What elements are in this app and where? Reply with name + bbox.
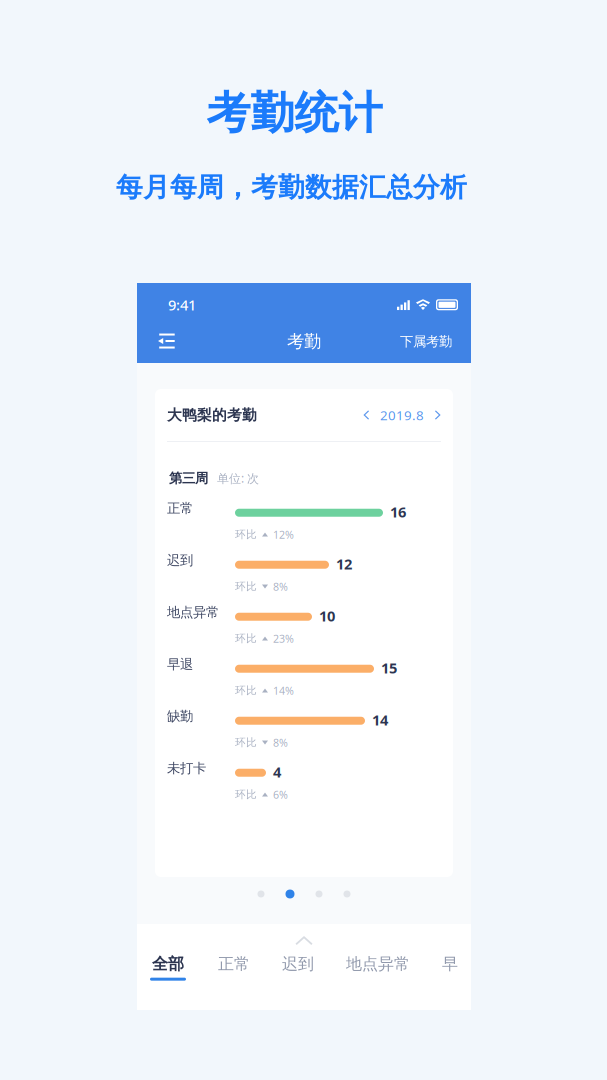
staticText: 考勤统计 <box>206 86 382 140</box>
staticText: 12 <box>336 554 352 573</box>
staticText: 迟到 <box>167 552 193 568</box>
staticText: 6% <box>273 787 288 802</box>
staticText: 环比 <box>235 788 257 801</box>
staticText: 全部 <box>152 954 184 974</box>
button[interactable]: 全部 <box>150 954 186 981</box>
staticText: 地点异常 <box>346 954 410 974</box>
staticText: 正常 <box>218 954 250 974</box>
button[interactable]: 早 <box>442 954 458 981</box>
staticText: 9:41 <box>168 295 196 314</box>
button[interactable]: Menu <box>152 327 181 355</box>
staticText: 2019.8 <box>380 406 424 424</box>
staticText: 地点异常 <box>167 604 219 620</box>
staticText: 环比 <box>235 632 257 645</box>
staticText: 8% <box>273 579 288 594</box>
staticText: 14% <box>273 683 294 698</box>
staticText: 8% <box>273 735 288 750</box>
button[interactable]: Expand <box>275 924 332 945</box>
staticText: 正常 <box>167 500 193 516</box>
staticText: 4 <box>273 762 281 781</box>
staticText: 14 <box>372 710 388 729</box>
staticText: 15 <box>381 658 397 677</box>
button[interactable]: 迟到 <box>282 954 314 981</box>
button[interactable]: 正常 <box>218 954 250 981</box>
staticText: 未打卡 <box>167 760 206 776</box>
staticText: 环比 <box>235 684 257 697</box>
staticText: 10 <box>319 606 335 625</box>
staticText: 第三周 <box>169 470 208 486</box>
staticText: 12% <box>273 527 294 542</box>
button[interactable]: 下属考勤 <box>395 328 457 355</box>
staticText: 23% <box>273 631 294 646</box>
staticText: 早 <box>442 954 458 974</box>
staticText: 单位: 次 <box>217 470 259 486</box>
staticText: 环比 <box>235 528 257 541</box>
staticText: 每月每周，考勤数据汇总分析 <box>116 171 467 204</box>
staticText: 考勤 <box>287 331 321 352</box>
staticText: 环比 <box>235 580 257 593</box>
staticText: 环比 <box>235 736 257 749</box>
button[interactable]: 地点异常 <box>346 954 410 981</box>
staticText: 16 <box>390 502 406 521</box>
staticText: 早退 <box>167 656 193 672</box>
staticText: 缺勤 <box>167 708 193 724</box>
staticText: 迟到 <box>282 954 314 974</box>
button[interactable]: 2019.8 <box>363 406 441 424</box>
staticText: 下属考勤 <box>400 333 452 350</box>
staticText: 大鸭梨的考勤 <box>167 406 257 424</box>
